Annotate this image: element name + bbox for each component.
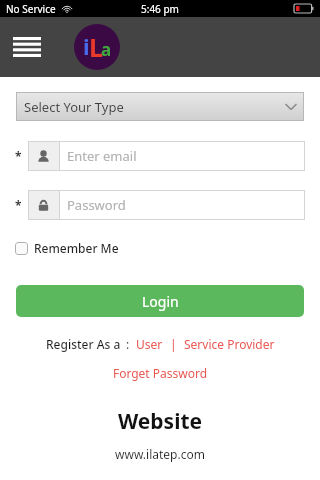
staticText: : <box>126 336 130 352</box>
staticText: Select Your Type <box>24 98 278 116</box>
staticText: Register As a <box>46 336 121 352</box>
staticText: * <box>15 197 22 213</box>
staticText: a <box>101 38 112 61</box>
staticText: L <box>89 30 103 64</box>
staticText: | <box>170 336 177 352</box>
button[interactable]: www.ilatep.com <box>0 446 320 462</box>
staticText: 5:46 pm <box>141 2 179 16</box>
staticText: Website <box>0 407 320 436</box>
staticText: * <box>15 148 22 164</box>
button[interactable]: Enter email <box>28 141 305 171</box>
button[interactable]: Select Your Type <box>16 92 304 121</box>
staticText: Enter email <box>67 147 137 165</box>
button[interactable]: Login <box>16 285 304 317</box>
button[interactable]: Forget Password <box>0 365 320 381</box>
staticText: Remember Me <box>34 240 119 256</box>
button[interactable]: Remember Me <box>15 240 119 256</box>
button[interactable]: Service Provider <box>184 336 275 352</box>
staticText: User <box>136 336 163 352</box>
staticText: i <box>83 31 90 61</box>
button[interactable]: User <box>136 336 163 352</box>
button[interactable]: Open navigation menu <box>8 32 46 62</box>
button[interactable]: Password <box>28 190 305 220</box>
staticText: Login <box>142 292 179 311</box>
staticText: Password <box>67 196 126 214</box>
staticText: No Service <box>6 2 56 16</box>
staticText: Service Provider <box>184 336 275 352</box>
button[interactable]: iLa home logo <box>74 24 120 70</box>
